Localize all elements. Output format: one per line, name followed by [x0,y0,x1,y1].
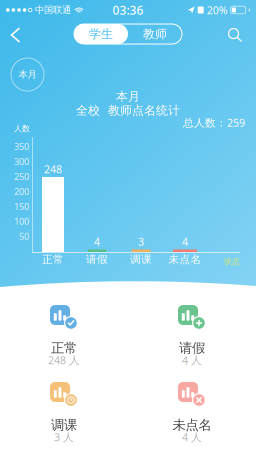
button[interactable]: 请假 [128,303,256,373]
staticText: 3 [138,234,144,249]
staticText: 4 [94,234,100,249]
staticText: 正常 [42,253,64,266]
staticText: 未点名 [168,253,201,266]
button[interactable]: Back [0,20,31,50]
staticText: 150 [14,200,29,212]
staticText: 50 [19,230,29,242]
button[interactable]: 未点名 [128,380,256,450]
staticText: 总人数：259 [183,115,245,130]
staticText: 调课 [130,253,152,266]
staticText: 3 人 [54,430,74,444]
staticText: 4 [182,234,188,249]
staticText: 人数 [14,124,30,133]
staticText: 中国联通 [35,4,71,16]
staticText: 200 [14,185,29,198]
staticText: 100 [14,215,29,227]
staticText: 本月 [18,69,36,80]
staticText: 350 [14,140,29,153]
staticText: 20% [207,3,228,17]
staticText: 未点名 [172,417,211,433]
staticText: 248 [44,162,62,176]
staticText: 调课 [51,417,77,433]
staticText: 请假 [86,253,108,266]
staticText: 正常 [51,340,77,356]
button[interactable]: 学生 [74,24,128,44]
staticText: 学生 [89,27,113,41]
staticText: 250 [14,170,29,183]
staticText: 状态 [224,257,240,266]
staticText: 03:36 [112,2,143,18]
staticText: 4 人 [182,430,202,444]
button[interactable]: Search [219,20,251,50]
button[interactable]: 教师 [128,24,182,44]
staticText: 本月 [116,89,140,104]
button[interactable]: 正常 [0,303,128,373]
staticText: 300 [14,155,29,168]
staticText: 4 人 [182,353,202,367]
button[interactable]: 调课 [0,380,128,450]
staticText: 教师 [143,27,167,41]
staticText: 请假 [179,340,205,356]
staticText: 全校 教师点名统计 [76,103,180,118]
staticText: 248 人 [48,353,80,367]
